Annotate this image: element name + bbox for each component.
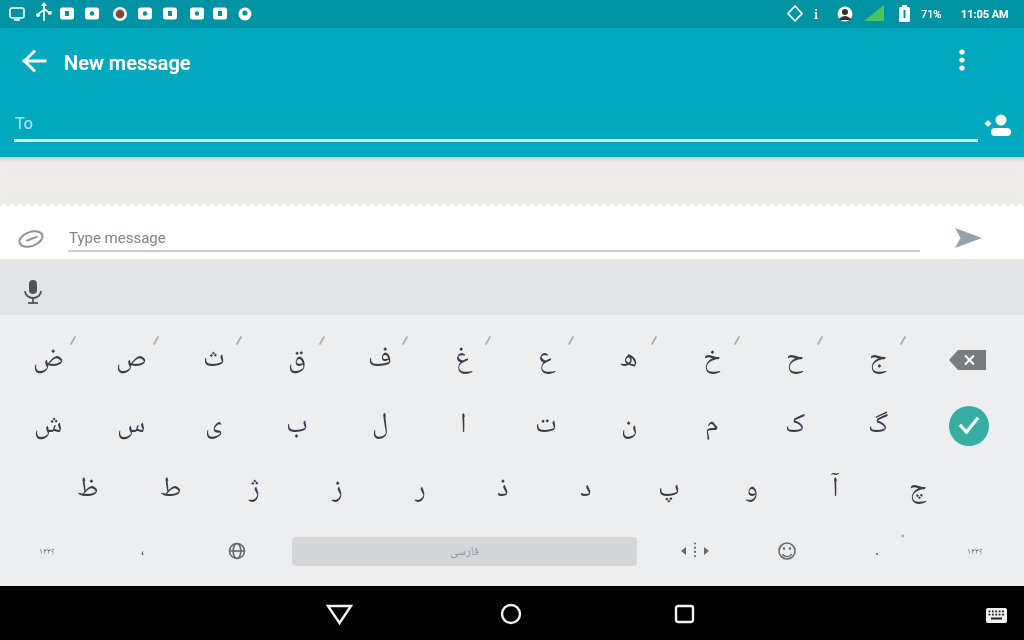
button[interactable]: ق <box>265 336 329 384</box>
staticText: آ <box>832 466 839 514</box>
staticText: چ <box>909 466 927 514</box>
button[interactable]: ت <box>514 402 578 448</box>
staticText: ی <box>205 402 223 448</box>
button[interactable] <box>946 220 992 258</box>
staticText: ج <box>869 336 887 384</box>
staticText: ل <box>372 402 389 448</box>
button[interactable] <box>212 528 262 572</box>
button[interactable]: ؟۱۲۳ <box>944 532 1006 570</box>
staticText: غ <box>455 336 472 384</box>
button[interactable]: ف <box>348 336 412 384</box>
button[interactable]: پ <box>637 466 701 514</box>
button[interactable]: . <box>852 528 902 572</box>
button[interactable]: ص <box>99 336 163 384</box>
staticText: و <box>745 466 759 514</box>
button[interactable]: ج <box>846 336 910 384</box>
button[interactable] <box>668 528 722 572</box>
button[interactable] <box>315 592 363 636</box>
staticText: i <box>814 5 819 23</box>
button[interactable]: ، <box>116 532 170 570</box>
button[interactable]: ن <box>597 402 661 448</box>
button[interactable]: ک <box>763 402 827 448</box>
staticText: ش <box>34 402 63 448</box>
button[interactable] <box>660 592 708 636</box>
button[interactable]: فارسی <box>292 537 637 566</box>
staticText: پ <box>658 466 680 514</box>
staticText: خ <box>703 336 721 384</box>
button[interactable]: ش <box>16 402 80 448</box>
staticText: Type message <box>69 229 166 247</box>
staticText: ذ <box>497 466 509 514</box>
button[interactable]: ض <box>16 336 80 384</box>
button[interactable]: غ <box>431 336 495 384</box>
button[interactable]: ذ <box>471 466 535 514</box>
staticText: ب <box>286 402 308 448</box>
button[interactable]: ؟۱۲۳ <box>16 532 78 570</box>
staticText: س <box>117 402 146 448</box>
staticText: گ <box>868 402 889 448</box>
button[interactable]: ا <box>431 402 495 448</box>
button[interactable]: ط <box>139 466 203 514</box>
button[interactable] <box>940 340 998 380</box>
staticText: . <box>875 541 880 559</box>
button[interactable]: ه <box>597 336 661 384</box>
staticText: ؟۱۲۳ <box>39 544 55 559</box>
button[interactable]: ر <box>388 466 452 514</box>
staticText: ث <box>203 336 225 384</box>
staticText: 11:05 AM <box>961 8 1009 21</box>
staticText: ت <box>535 402 557 448</box>
staticText: ن <box>621 402 638 448</box>
staticText: ، <box>141 538 145 564</box>
button[interactable]: گ <box>846 402 910 448</box>
button[interactable] <box>942 40 982 80</box>
staticText: 71% <box>921 8 942 21</box>
staticText: ک <box>785 402 806 448</box>
button[interactable] <box>762 528 812 572</box>
staticText: ظ <box>77 466 99 514</box>
button[interactable]: خ <box>680 336 744 384</box>
staticText: ژ <box>249 466 260 514</box>
button[interactable]: ع <box>514 336 578 384</box>
button[interactable]: چ <box>886 466 950 514</box>
button[interactable]: د <box>554 466 618 514</box>
staticText: ع <box>538 336 555 384</box>
staticText: ز <box>332 466 343 514</box>
button[interactable]: ب <box>265 402 329 448</box>
button[interactable]: و <box>720 466 784 514</box>
staticText: ط <box>160 466 182 514</box>
staticText: ه <box>620 336 638 384</box>
staticText: ا <box>460 402 467 448</box>
button[interactable]: ز <box>305 466 369 514</box>
button[interactable]: آ <box>803 466 867 514</box>
staticText: ض <box>33 336 64 384</box>
staticText: New message <box>64 51 191 74</box>
button[interactable] <box>12 222 52 256</box>
staticText: ؟۱۲۳ <box>967 544 983 559</box>
staticText: د <box>580 466 592 514</box>
button[interactable] <box>947 404 991 448</box>
staticText: ر <box>415 466 426 514</box>
button[interactable]: ژ <box>222 466 286 514</box>
button[interactable]: ی <box>182 402 246 448</box>
staticText: ح <box>786 336 804 384</box>
button[interactable]: ث <box>182 336 246 384</box>
button[interactable]: س <box>99 402 163 448</box>
button[interactable]: م <box>680 402 744 448</box>
staticText: ص <box>116 336 147 384</box>
button[interactable]: ظ <box>56 466 120 514</box>
staticText: ق <box>288 336 307 384</box>
button[interactable] <box>14 272 54 312</box>
button[interactable] <box>975 105 1021 147</box>
button[interactable] <box>976 596 1016 636</box>
staticText: فارسی <box>450 542 479 562</box>
staticText: ف <box>368 336 392 384</box>
button[interactable]: ل <box>348 402 412 448</box>
staticText: م <box>705 402 719 448</box>
staticText: To <box>15 114 33 133</box>
button[interactable] <box>14 42 54 82</box>
button[interactable] <box>487 592 535 636</box>
button[interactable]: ح <box>763 336 827 384</box>
